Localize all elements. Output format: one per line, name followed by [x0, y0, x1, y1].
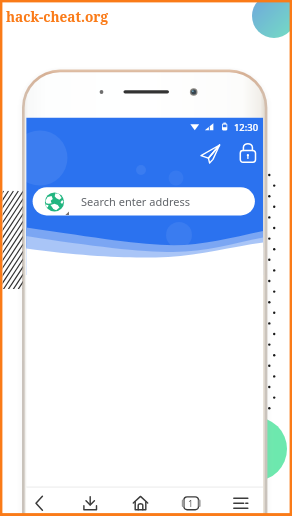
button[interactable] — [31, 187, 255, 215]
button[interactable]: Tabs — [178, 489, 204, 515]
button[interactable]: Back — [28, 489, 54, 515]
button[interactable]: Send — [198, 142, 224, 168]
staticText: 12:30 — [234, 121, 259, 134]
staticText: hack-cheat.org — [6, 7, 108, 26]
button[interactable]: Downloads — [77, 489, 103, 515]
button[interactable]: Menu — [228, 489, 254, 515]
button[interactable]: Home — [128, 489, 154, 515]
staticText: Search enter address — [81, 194, 191, 209]
staticText: 1 — [188, 497, 194, 509]
button[interactable]: Private mode — [238, 142, 260, 164]
